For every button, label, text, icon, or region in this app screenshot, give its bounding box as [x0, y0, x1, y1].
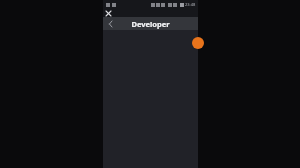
- button[interactable]: Close: [105, 10, 112, 17]
- staticText: 23:48: [185, 2, 196, 7]
- staticText: Developer: [103, 19, 198, 29]
- button[interactable]: Add: [192, 37, 204, 49]
- button[interactable]: Back: [105, 19, 115, 29]
